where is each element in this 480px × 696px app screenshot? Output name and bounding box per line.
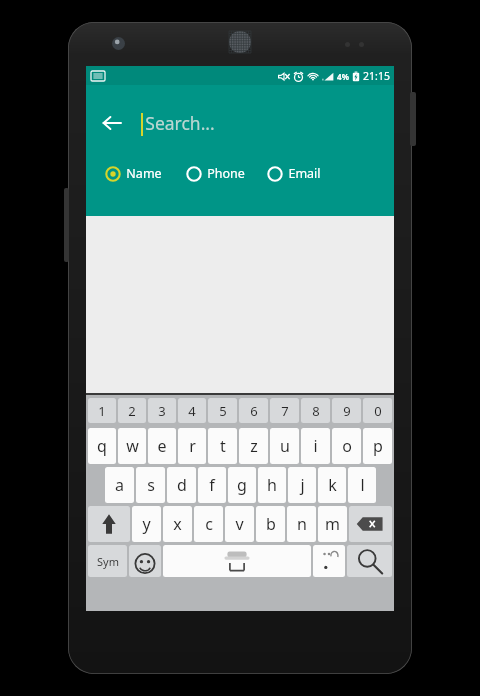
button[interactable]: h xyxy=(258,467,286,503)
button[interactable]: w xyxy=(118,428,146,464)
staticText: 6 xyxy=(250,402,258,420)
button[interactable]: Punctuation xyxy=(313,545,345,577)
button[interactable]: n xyxy=(287,506,316,542)
button[interactable]: 0 xyxy=(363,398,392,423)
staticText: 3 xyxy=(158,402,166,420)
button[interactable]: Sym xyxy=(88,545,127,577)
button[interactable]: u xyxy=(270,428,299,464)
button[interactable]: 8 xyxy=(301,398,330,423)
staticText: Search... xyxy=(145,111,215,135)
button[interactable]: v xyxy=(225,506,254,542)
staticText: 21:15 xyxy=(363,69,390,83)
button[interactable]: Email xyxy=(266,161,322,186)
staticText: h xyxy=(267,474,277,496)
button[interactable]: x xyxy=(163,506,192,542)
button[interactable]: p xyxy=(363,428,392,464)
button[interactable]: z xyxy=(239,428,268,464)
staticText: j xyxy=(300,474,305,496)
staticText: w xyxy=(126,435,139,457)
staticText: g xyxy=(237,474,247,496)
staticText: 7 xyxy=(281,402,289,420)
staticText: q xyxy=(97,435,107,457)
button[interactable]: o xyxy=(332,428,361,464)
staticText: r xyxy=(189,435,196,457)
staticText: 4% xyxy=(337,71,349,82)
staticText: a xyxy=(115,474,124,496)
staticText: Name xyxy=(126,165,162,182)
button[interactable]: q xyxy=(88,428,116,464)
button[interactable]: c xyxy=(194,506,223,542)
button[interactable]: Shift xyxy=(88,506,130,542)
button[interactable]: 4 xyxy=(178,398,206,423)
staticText: 0 xyxy=(374,402,382,420)
staticText: o xyxy=(342,435,352,457)
button[interactable]: m xyxy=(318,506,347,542)
button[interactable]: 1 xyxy=(88,398,116,423)
button[interactable]: r xyxy=(178,428,206,464)
button[interactable]: 9 xyxy=(332,398,361,423)
staticText: n xyxy=(297,513,307,535)
staticText: s xyxy=(147,474,155,496)
staticText: z xyxy=(250,435,258,457)
staticText: 9 xyxy=(343,402,351,420)
staticText: p xyxy=(373,435,383,457)
button[interactable]: 2 xyxy=(118,398,146,423)
button[interactable]: 7 xyxy=(270,398,299,423)
button[interactable]: e xyxy=(148,428,176,464)
staticText: f xyxy=(209,474,215,496)
button[interactable]: t xyxy=(208,428,237,464)
staticText: m xyxy=(325,513,340,535)
button[interactable]: b xyxy=(256,506,285,542)
button[interactable]: j xyxy=(288,467,316,503)
staticText: d xyxy=(177,474,187,496)
button[interactable]: Phone xyxy=(185,161,246,186)
staticText: c xyxy=(205,513,213,535)
button[interactable]: s xyxy=(136,467,165,503)
button[interactable]: f xyxy=(198,467,226,503)
button[interactable]: k xyxy=(318,467,346,503)
staticText: k xyxy=(328,474,337,496)
staticText: Sym xyxy=(97,554,119,569)
button[interactable]: 3 xyxy=(148,398,176,423)
staticText: i xyxy=(313,435,318,457)
button[interactable]: Emoji xyxy=(129,545,161,577)
button[interactable]: Space xyxy=(163,545,311,577)
staticText: 2 xyxy=(128,402,136,420)
staticText: Email xyxy=(288,165,321,182)
staticText: 4 xyxy=(188,402,196,420)
staticText: v xyxy=(235,513,244,535)
button[interactable]: a xyxy=(105,467,134,503)
button[interactable]: Backspace xyxy=(349,506,392,542)
staticText: 5 xyxy=(219,402,227,420)
staticText: e xyxy=(157,435,167,457)
button[interactable]: 5 xyxy=(208,398,237,423)
staticText: 8 xyxy=(312,402,320,420)
button[interactable]: d xyxy=(167,467,196,503)
staticText: b xyxy=(266,513,276,535)
staticText: x xyxy=(173,513,182,535)
staticText: y xyxy=(142,513,151,535)
button[interactable]: 6 xyxy=(239,398,268,423)
button[interactable]: i xyxy=(301,428,330,464)
staticText: t xyxy=(220,435,226,457)
button[interactable]: Back xyxy=(92,103,132,143)
button[interactable]: l xyxy=(348,467,376,503)
button[interactable]: Search xyxy=(347,545,392,577)
staticText: Phone xyxy=(207,165,245,182)
staticText: u xyxy=(280,435,290,457)
button[interactable]: Search... xyxy=(141,85,384,161)
button[interactable]: y xyxy=(132,506,161,542)
staticText: l xyxy=(360,474,365,496)
staticText: 1 xyxy=(98,402,106,420)
button[interactable]: g xyxy=(228,467,256,503)
button[interactable]: Name xyxy=(104,161,163,186)
